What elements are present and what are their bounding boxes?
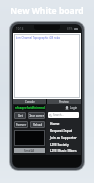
staticText: Home — [50, 122, 60, 126]
button[interactable]: Home — [48, 120, 79, 127]
staticText: Send All — [24, 149, 35, 153]
staticText: 10:14 — [16, 27, 24, 31]
staticText: Search... — [53, 113, 64, 117]
staticText: nfoaqeefwidfnirmndfa — [15, 106, 45, 110]
staticText: Reload — [33, 123, 43, 127]
button[interactable]: Search... — [48, 112, 79, 118]
staticText: Join as Supporter — [50, 136, 77, 140]
button[interactable]: Reload — [30, 121, 45, 128]
staticText: LIVE Music Mixes — [50, 149, 77, 153]
staticText: Forever — [16, 123, 27, 127]
staticText: Console — [25, 100, 35, 104]
staticText: Get — [18, 114, 23, 118]
button[interactable]: Login — [64, 105, 79, 111]
button[interactable]: Preview — [47, 99, 81, 104]
staticText: 85% — [67, 27, 73, 31]
button[interactable]: Forever — [14, 121, 28, 128]
staticText: New White board theme — [0, 5, 94, 17]
staticText: Login — [70, 106, 78, 110]
button[interactable]: Clear screen — [28, 112, 45, 119]
button[interactable]: Join as Supporter — [48, 134, 79, 141]
button[interactable]: LIVE Music Mixes — [48, 148, 79, 154]
staticText: Preview — [59, 100, 69, 104]
staticText: LIVE Society Status — [50, 143, 79, 147]
button[interactable]: Send All — [14, 148, 45, 153]
button[interactable]: LIVE Society Status — [48, 141, 79, 148]
button[interactable]: Console — [13, 99, 46, 104]
staticText: Request Input Page — [50, 129, 79, 133]
staticText: b m Channel Topographic iOS robo — [16, 36, 61, 40]
button[interactable]: Request Input Page — [48, 127, 79, 134]
button[interactable]: Get — [14, 112, 26, 119]
staticText: Clear screen — [28, 114, 45, 118]
